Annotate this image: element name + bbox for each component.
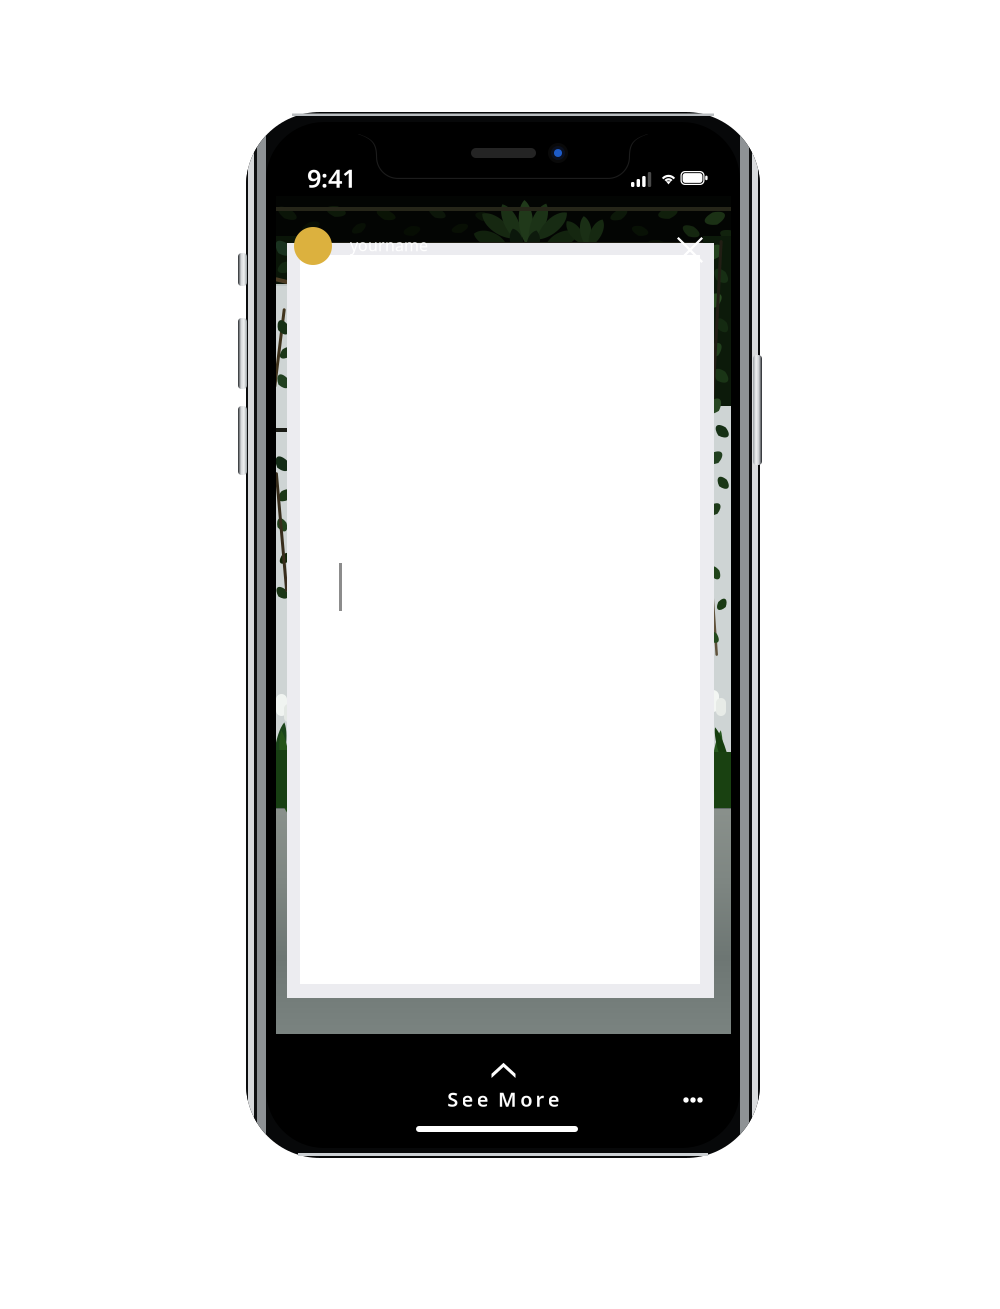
button[interactable]: Close [677, 237, 703, 263]
staticText: 9:41 [307, 161, 356, 195]
staticText: M [498, 1086, 517, 1112]
staticText: o [520, 1086, 532, 1112]
button[interactable]: More options [675, 1088, 711, 1112]
staticText: e [548, 1086, 560, 1112]
staticText: yourname [350, 234, 428, 256]
staticText: r [535, 1086, 544, 1112]
staticText: e [461, 1086, 473, 1112]
staticText: S [447, 1086, 458, 1112]
button[interactable]: S [383, 1062, 623, 1114]
staticText: e [477, 1086, 489, 1112]
